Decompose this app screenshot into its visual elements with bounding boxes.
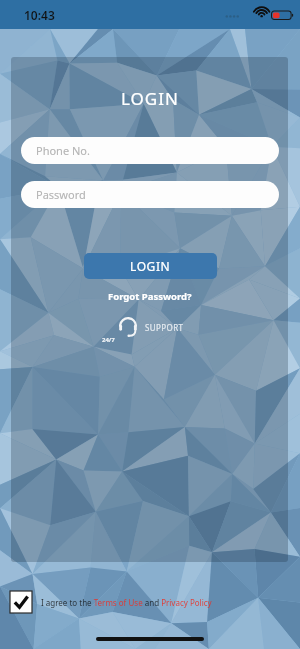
staticText: Password — [36, 187, 86, 202]
staticText: LOGIN — [130, 258, 171, 274]
staticText: Forgot Password? — [108, 290, 192, 303]
button[interactable]: Password — [21, 181, 279, 208]
button[interactable]: LOGIN — [84, 253, 217, 279]
button[interactable]: Forgot Password? — [102, 288, 198, 305]
staticText: 10:43 — [24, 7, 55, 23]
button[interactable]: SUPPORT — [113, 314, 188, 340]
button[interactable]: Phone No. — [21, 137, 279, 164]
staticText: LOGIN — [121, 87, 179, 110]
staticText: 24/7 — [102, 336, 115, 344]
staticText: SUPPORT — [145, 322, 184, 333]
staticText: I agree to the Terms of Use and Privacy … — [41, 597, 212, 608]
other: Agree to terms checkbox — [10, 591, 32, 613]
staticText: Phone No. — [36, 143, 90, 158]
button[interactable]: Agree to terms checkbox — [10, 591, 212, 613]
